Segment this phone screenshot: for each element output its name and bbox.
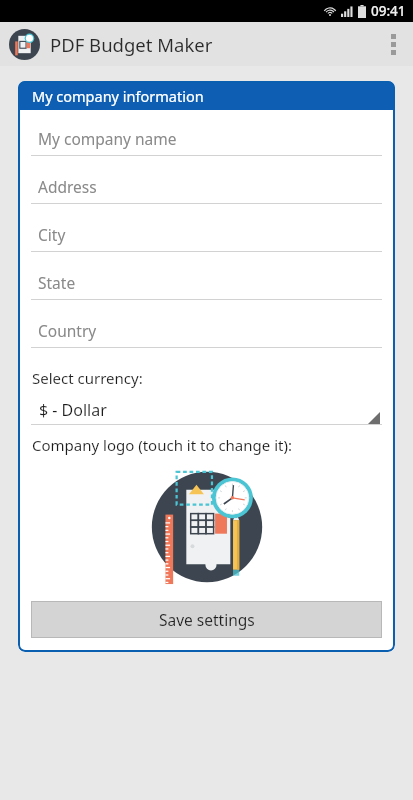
- staticText: Save settings: [159, 609, 255, 630]
- button[interactable]: My company name: [31, 121, 382, 169]
- staticText: 09:41: [371, 2, 406, 20]
- staticText: Country: [38, 320, 97, 341]
- staticText: My company information: [32, 86, 204, 106]
- button[interactable]: Address: [31, 169, 382, 217]
- button[interactable]: Country: [31, 313, 382, 361]
- button[interactable]: Company logo: [18, 463, 395, 591]
- staticText: Company logo (touch it to change it):: [32, 435, 292, 455]
- staticText: State: [38, 272, 76, 293]
- staticText: City: [38, 224, 66, 245]
- button[interactable]: Save settings: [31, 601, 382, 638]
- staticText: My company name: [38, 128, 177, 149]
- staticText: Address: [38, 176, 97, 197]
- staticText: $ - Dollar: [39, 399, 107, 421]
- staticText: Select currency:: [32, 368, 143, 388]
- button[interactable]: More options: [373, 22, 413, 66]
- button[interactable]: State: [31, 265, 382, 313]
- button[interactable]: $ - Dollar: [31, 396, 382, 425]
- staticText: PDF Budget Maker: [50, 32, 213, 57]
- button[interactable]: City: [31, 217, 382, 265]
